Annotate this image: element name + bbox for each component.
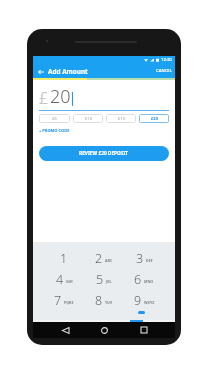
button[interactable]: Back (35, 66, 46, 77)
staticText: + PROMO CODE (39, 128, 70, 133)
button[interactable]: £10 (73, 114, 103, 123)
button[interactable]: REVIEW £20 DEPOSIT (39, 146, 169, 161)
staticText: JKL (106, 279, 112, 284)
staticText: PQRS (64, 300, 74, 305)
staticText: £ (39, 87, 49, 109)
staticText: £20 (151, 116, 158, 121)
staticText: 4 (56, 271, 64, 288)
staticText: ABC (105, 258, 113, 263)
staticText: TUV (105, 300, 113, 305)
staticText: 2 (95, 250, 103, 267)
button[interactable]: 8 (84, 290, 124, 311)
button[interactable]: £20 (139, 114, 169, 123)
button[interactable]: 6 (124, 269, 164, 290)
staticText: 12:30 (161, 57, 172, 63)
button[interactable]: 9 (124, 290, 164, 311)
button[interactable]: 7 (44, 290, 84, 311)
button[interactable]: CANCEL (153, 65, 175, 77)
button[interactable]: Recents (136, 322, 152, 338)
button[interactable]: £5 (39, 114, 70, 123)
button[interactable]: £ (39, 84, 169, 109)
staticText: 3 (136, 250, 144, 267)
staticText: 6 (134, 271, 142, 288)
button[interactable]: + PROMO CODE (39, 127, 70, 134)
staticText: £15 (118, 116, 125, 121)
button[interactable]: 4 (44, 269, 84, 290)
button[interactable]: 3 (124, 248, 164, 269)
button[interactable]: Home (96, 322, 112, 338)
staticText: WXYZ (144, 300, 155, 305)
staticText: £5 (52, 116, 57, 121)
staticText: 20 (50, 84, 71, 109)
staticText: DEF (146, 258, 153, 263)
staticText: 1 (60, 250, 68, 267)
button[interactable]: 2 (84, 248, 124, 269)
staticText: GHI (66, 279, 73, 284)
staticText: Add Amount (48, 67, 88, 76)
staticText: £10 (85, 116, 92, 121)
staticText: CANCEL (156, 68, 172, 74)
staticText: MNO (144, 279, 154, 284)
button[interactable]: Back (57, 322, 73, 338)
button[interactable]: 1 (44, 248, 84, 269)
staticText: REVIEW £20 DEPOSIT (79, 150, 129, 157)
staticText: 9 (134, 292, 142, 309)
button[interactable]: 5 (84, 269, 124, 290)
button[interactable]: £15 (106, 114, 136, 123)
staticText: 8 (95, 292, 103, 309)
staticText: 7 (54, 292, 62, 309)
staticText: 5 (96, 271, 104, 288)
